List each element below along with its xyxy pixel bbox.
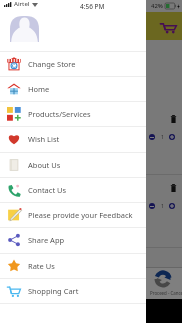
button[interactable]: Please provide your Feedback <box>0 202 146 227</box>
staticText: 1 <box>161 203 164 210</box>
button[interactable]: Products/Services <box>0 101 146 126</box>
button[interactable]: Rate Us <box>0 253 146 278</box>
staticText: Home <box>28 84 50 94</box>
button[interactable]: Share App <box>0 227 146 252</box>
button[interactable]: Contact Us <box>0 177 146 202</box>
button[interactable]: Cart <box>160 21 177 34</box>
staticText: 1 <box>161 134 164 141</box>
button[interactable]: Home <box>0 76 146 101</box>
button[interactable]: About Us <box>0 152 146 177</box>
button[interactable] <box>146 0 182 323</box>
staticText: Proceed - Cancel <box>150 290 182 296</box>
staticText: Shopping Cart <box>28 286 79 296</box>
staticText: Rate Us <box>28 261 55 271</box>
staticText: Airtel <box>14 0 30 8</box>
button[interactable]: Wish List <box>0 126 146 151</box>
button[interactable]: Decrease quantity <box>149 203 155 209</box>
staticText: Contact Us <box>28 185 67 195</box>
button[interactable]: Delete <box>170 115 177 123</box>
staticText: 42% <box>151 2 163 10</box>
staticText: Wish List <box>28 134 60 144</box>
button[interactable]: Decrease quantity <box>149 134 155 140</box>
staticText: About Us <box>28 160 61 170</box>
button[interactable]: Shopping Cart <box>0 278 146 303</box>
staticText: Share App <box>28 235 65 245</box>
staticText: 4:56 PM <box>79 2 104 11</box>
button[interactable]: Increase quantity <box>169 203 175 209</box>
button[interactable]: Delete <box>170 184 177 192</box>
staticText: Change Store <box>28 59 76 69</box>
button[interactable]: Proceed - Cancel <box>0 267 182 299</box>
staticText: Airtel <box>14 0 30 8</box>
staticText: Products/Services <box>28 109 91 119</box>
staticText: 4:56 PM <box>80 2 105 11</box>
staticText: Please provide your Feedback <box>28 210 133 220</box>
button[interactable]: Increase quantity <box>169 134 175 140</box>
button[interactable]: Change Store <box>0 51 146 76</box>
